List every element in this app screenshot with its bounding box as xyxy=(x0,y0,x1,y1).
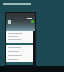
button[interactable]: Add xyxy=(31,20,34,23)
